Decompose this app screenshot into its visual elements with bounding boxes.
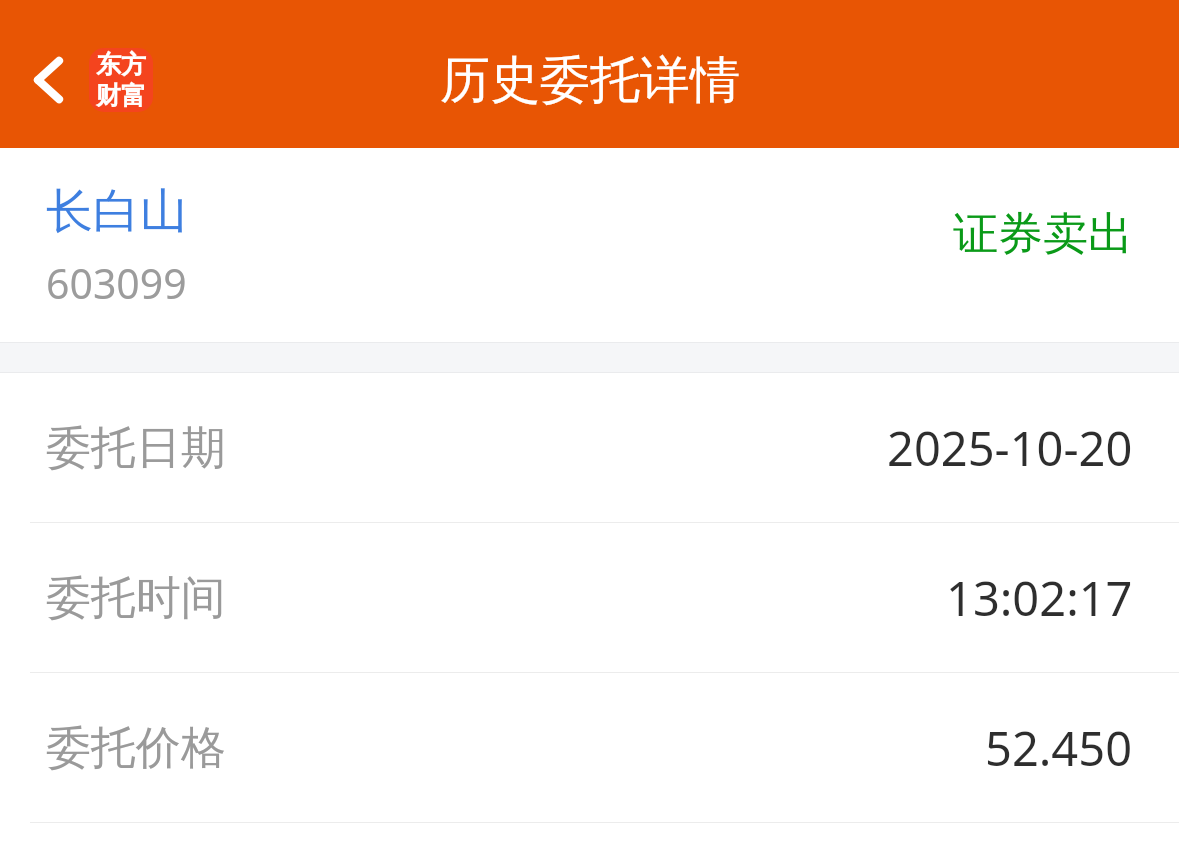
staticText: 委托时间 [46,570,226,627]
button[interactable]: Back [14,45,84,115]
staticText: 长白山 [46,182,187,241]
button[interactable]: 东方财富 home [89,48,153,112]
staticText: 历史委托详情 [440,49,740,112]
staticText: 2025-10-20 [887,416,1133,480]
button[interactable]: 长白山 [0,148,1179,342]
staticText: 52.450 [985,716,1133,780]
staticText: 委托日期 [46,420,226,477]
staticText: 东方 [96,49,146,80]
button[interactable]: 委托价格 [0,673,1179,823]
staticText: 13:02:17 [946,566,1133,630]
staticText: 证券卖出 [953,206,1133,263]
button[interactable]: 委托日期 [0,373,1179,523]
staticText: 603099 [46,255,187,311]
button[interactable]: 委托时间 [0,523,1179,673]
staticText: 委托价格 [46,720,226,777]
staticText: 财富 [96,80,146,111]
